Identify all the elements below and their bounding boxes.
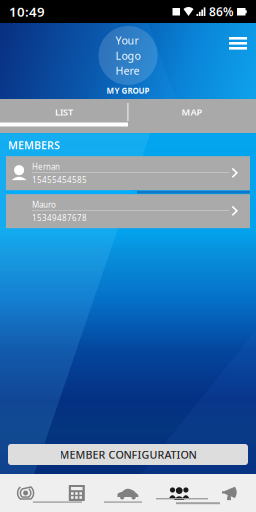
button[interactable]: MAP [128, 99, 256, 133]
staticText: Hernan [32, 161, 60, 172]
button[interactable]: Vehicles [102, 474, 154, 512]
button[interactable]: Hernan [6, 156, 250, 190]
staticText: MEMBERS [8, 138, 60, 152]
staticText: Logo [115, 48, 140, 63]
staticText: 86% [209, 3, 234, 19]
button[interactable]: LIST [0, 99, 128, 133]
button[interactable]: Group [154, 474, 205, 512]
button[interactable]: Keypad [51, 474, 102, 512]
staticText: 15455454585 [32, 175, 87, 185]
staticText: LIST [55, 106, 73, 118]
staticText: MAP [181, 106, 202, 118]
staticText: MEMBER CONFIGURATION [59, 447, 196, 462]
button[interactable]: Live [0, 474, 51, 512]
staticText: Mauro [32, 199, 56, 210]
staticText: MY GROUP [106, 85, 149, 96]
staticText: 10:49 [9, 3, 45, 20]
staticText: 15349487678 [32, 213, 87, 223]
button[interactable]: Announcements [205, 474, 256, 512]
button[interactable]: Mauro [6, 194, 250, 228]
button[interactable]: MEMBER CONFIGURATION [8, 444, 248, 465]
button[interactable]: Menu [220, 30, 256, 57]
staticText: Here [115, 64, 139, 78]
staticText: Your [115, 33, 138, 47]
